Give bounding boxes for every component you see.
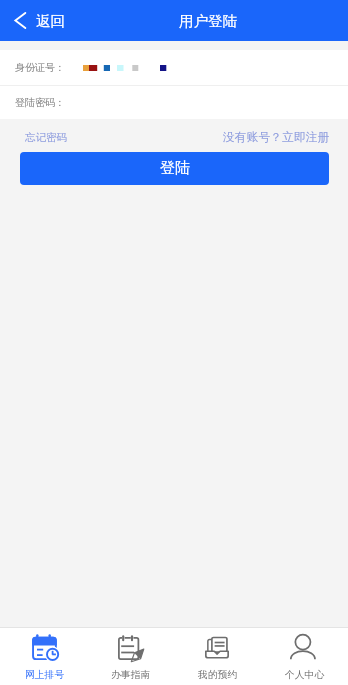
button[interactable]: Back <box>0 4 67 37</box>
staticText: 用户登陆 <box>179 12 237 30</box>
button[interactable]: 网上排号 <box>2 628 88 681</box>
other: Back <box>13 11 27 30</box>
staticText: 身份证号： <box>15 61 65 74</box>
staticText: 登陆密码： <box>15 96 65 109</box>
button[interactable]: 个人中心 <box>261 628 348 681</box>
staticText: 办事指南 <box>111 669 151 681</box>
staticText: 返回 <box>36 12 65 30</box>
button[interactable]: 办事指南 <box>88 628 174 681</box>
button[interactable]: 登陆 <box>20 152 329 185</box>
button[interactable]: 身份证号： <box>0 50 348 85</box>
button[interactable]: 没有账号？立即注册 <box>223 130 330 145</box>
staticText: 个人中心 <box>285 669 325 681</box>
staticText: 我的预约 <box>198 669 238 681</box>
staticText: 网上排号 <box>25 669 65 681</box>
button[interactable]: 忘记密码 <box>25 131 67 144</box>
button[interactable]: 我的预约 <box>174 628 261 681</box>
button[interactable]: 登陆密码： <box>0 86 348 119</box>
staticText: 登陆 <box>160 159 190 178</box>
